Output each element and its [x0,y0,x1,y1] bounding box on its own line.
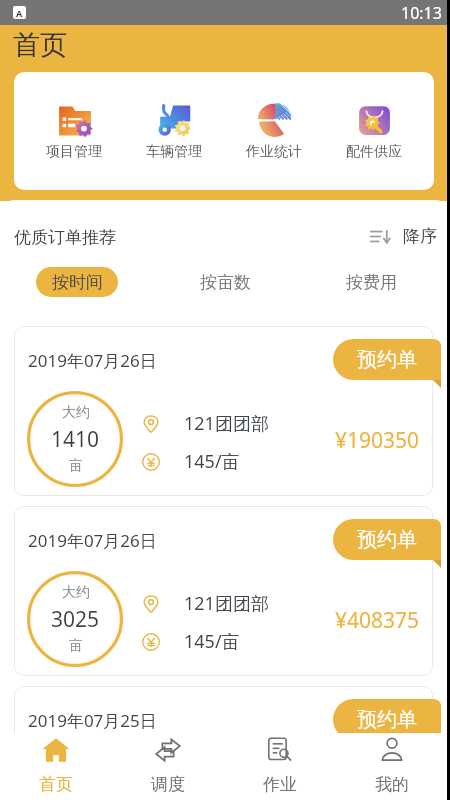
button[interactable]: 2019年07月26日 [14,326,433,496]
staticText: 按时间 [52,272,103,293]
button[interactable]: 作业统计 [224,72,324,190]
button[interactable]: 我的 [336,733,448,800]
staticText: 1410 [51,425,100,454]
staticText: A [16,7,23,19]
staticText: 10:13 [401,2,442,24]
staticText: 降序 [403,226,437,247]
staticText: 2019年07月25日 [28,709,157,732]
staticText: ¥190350 [335,426,420,455]
staticText: 预约单 [357,527,417,552]
staticText: 2019年07月26日 [28,529,157,552]
button[interactable]: 调度 [112,733,224,800]
button[interactable]: 按时间 [36,267,118,297]
staticText: 我的 [375,774,409,795]
staticText: 调度 [151,774,185,795]
staticText: 大约 [62,584,90,602]
staticText: 121团团部 [184,411,269,436]
staticText: 按费用 [346,272,397,293]
staticText: 首页 [39,774,73,795]
staticText: 3025 [51,605,100,634]
button[interactable]: 作业 [224,733,336,800]
staticText: 145/亩 [184,629,240,654]
staticText: 按亩数 [200,272,251,293]
button[interactable]: 首页 [0,733,112,800]
staticText: 大约 [62,404,90,422]
button[interactable]: 2019年07月25日 [14,686,433,733]
staticText: 预约单 [357,707,417,732]
button[interactable]: 按亩数 [184,267,266,297]
staticText: 亩 [69,457,83,475]
staticText: 项目管理 [46,143,102,161]
button[interactable]: 2019年07月26日 [14,506,433,676]
staticText: 作业统计 [246,143,302,161]
staticText: 预约单 [357,347,417,372]
staticText: 145/亩 [184,449,240,474]
staticText: 优质订单推荐 [14,227,116,248]
staticText: ¥408375 [335,606,420,635]
button[interactable]: 项目管理 [24,72,124,190]
staticText: 亩 [69,637,83,655]
staticText: 121团团部 [184,591,269,616]
staticText: 作业 [263,774,297,795]
button[interactable]: 车辆管理 [124,72,224,190]
staticText: 车辆管理 [146,143,202,161]
staticText: 2019年07月26日 [28,349,157,372]
staticText: 配件供应 [346,143,402,161]
button[interactable]: 降序 [370,226,437,247]
button[interactable]: 配件供应 [324,72,424,190]
staticText: 首页 [13,28,67,62]
button[interactable]: 按费用 [330,267,412,297]
